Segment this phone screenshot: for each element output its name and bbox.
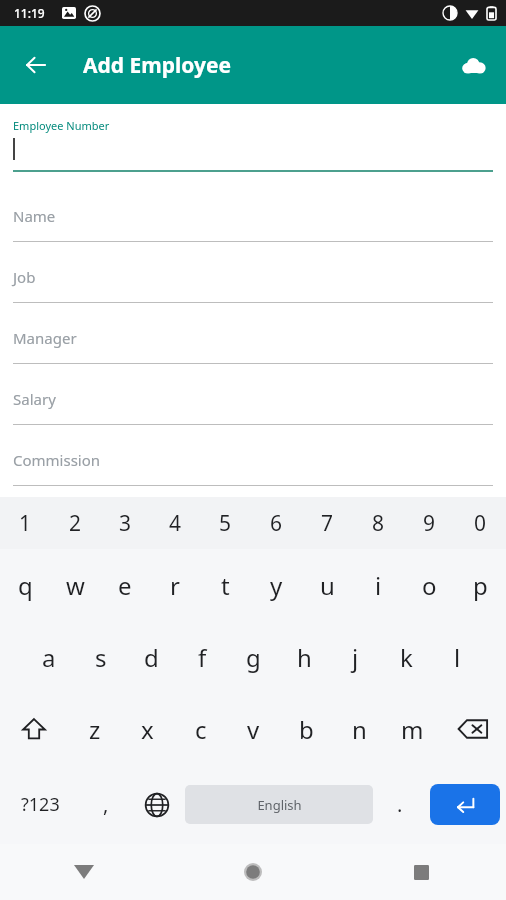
staticText: p [473, 569, 488, 602]
staticText: h [297, 641, 312, 674]
button[interactable]: , [81, 765, 131, 844]
button[interactable]: Recents [337, 844, 506, 900]
staticText: Add Employee [83, 51, 232, 80]
staticText: k [400, 641, 413, 674]
staticText: 6 [270, 509, 283, 538]
staticText: e [118, 569, 132, 602]
staticText: o [422, 569, 437, 602]
button[interactable]: a [23, 621, 75, 693]
button[interactable]: z [68, 693, 121, 765]
button[interactable]: n [333, 693, 386, 765]
staticText: English [257, 796, 302, 814]
button[interactable]: 0 [455, 497, 506, 549]
button[interactable]: q [0, 549, 50, 621]
button[interactable]: x [121, 693, 174, 765]
staticText: b [299, 713, 314, 746]
staticText: f [198, 641, 207, 674]
staticText: m [401, 713, 424, 746]
button[interactable]: Back [0, 844, 168, 900]
button[interactable]: e [100, 549, 150, 621]
staticText: Employee Number [13, 118, 110, 133]
staticText: q [18, 569, 33, 602]
staticText: u [320, 569, 335, 602]
staticText: Salary [13, 389, 56, 409]
button[interactable]: Commission [0, 434, 506, 492]
button[interactable]: g [228, 621, 279, 693]
button[interactable]: Manager [0, 312, 506, 370]
staticText: Manager [13, 328, 77, 348]
staticText: a [42, 641, 56, 674]
staticText: c [195, 713, 207, 746]
button[interactable]: 6 [251, 497, 302, 549]
button[interactable]: d [126, 621, 177, 693]
button[interactable]: Change language [131, 765, 183, 844]
staticText: v [247, 713, 260, 746]
staticText: r [170, 569, 180, 602]
button[interactable]: Home [168, 844, 337, 900]
button[interactable]: Employee Number [0, 114, 506, 175]
button[interactable]: r [150, 549, 200, 621]
staticText: 5 [219, 509, 232, 538]
button[interactable]: y [251, 549, 302, 621]
button[interactable]: Name [0, 190, 506, 248]
button[interactable]: Upload [450, 42, 496, 88]
button[interactable]: 4 [150, 497, 200, 549]
button[interactable]: k [381, 621, 432, 693]
staticText: s [95, 641, 107, 674]
button[interactable]: s [75, 621, 126, 693]
staticText: y [270, 569, 283, 602]
staticText: 4 [169, 509, 182, 538]
button[interactable]: Shift [0, 693, 68, 765]
staticText: j [352, 641, 359, 674]
staticText: g [246, 641, 261, 674]
button[interactable]: 8 [353, 497, 404, 549]
button[interactable]: b [280, 693, 333, 765]
button[interactable]: t [200, 549, 251, 621]
button[interactable]: w [50, 549, 100, 621]
staticText: 3 [119, 509, 132, 538]
staticText: 7 [321, 509, 334, 538]
staticText: 2 [69, 509, 82, 538]
button[interactable]: ?123 [0, 765, 81, 844]
button[interactable]: Back [14, 43, 58, 87]
button[interactable]: Job [0, 251, 506, 309]
button[interactable]: h [279, 621, 330, 693]
staticText: x [141, 713, 154, 746]
staticText: 0 [474, 509, 487, 538]
button[interactable]: p [455, 549, 506, 621]
staticText: n [352, 713, 367, 746]
button[interactable]: English [185, 785, 373, 824]
button[interactable]: c [174, 693, 227, 765]
staticText: , [103, 791, 109, 818]
button[interactable]: o [404, 549, 455, 621]
staticText: . [397, 791, 403, 818]
staticText: 11:19 [14, 5, 45, 21]
button[interactable]: i [353, 549, 404, 621]
button[interactable]: 1 [0, 497, 50, 549]
staticText: Name [13, 206, 56, 226]
staticText: z [89, 713, 101, 746]
staticText: ?123 [21, 792, 60, 817]
staticText: d [144, 641, 159, 674]
staticText: l [454, 641, 461, 674]
button[interactable]: v [227, 693, 280, 765]
button[interactable]: 2 [50, 497, 100, 549]
button[interactable]: 3 [100, 497, 150, 549]
button[interactable]: . [375, 765, 424, 844]
button[interactable]: Salary [0, 373, 506, 431]
staticText: i [375, 569, 382, 602]
button[interactable]: 7 [302, 497, 353, 549]
button[interactable]: f [177, 621, 228, 693]
staticText: Job [13, 267, 36, 287]
staticText: t [221, 569, 230, 602]
button[interactable]: 9 [404, 497, 455, 549]
button[interactable]: l [432, 621, 483, 693]
button[interactable]: m [386, 693, 439, 765]
button[interactable]: Backspace [439, 693, 506, 765]
button[interactable]: j [330, 621, 381, 693]
button[interactable]: u [302, 549, 353, 621]
staticText: w [66, 569, 85, 602]
staticText: 8 [372, 509, 385, 538]
button[interactable]: Enter [430, 784, 500, 825]
button[interactable]: 5 [200, 497, 251, 549]
